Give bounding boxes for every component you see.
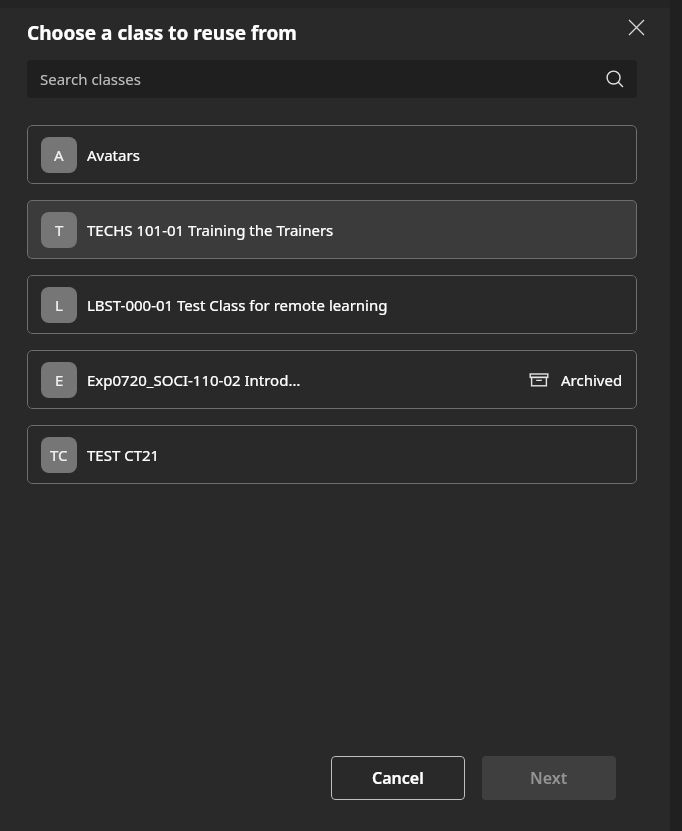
staticText: Choose a class to reuse from: [27, 20, 297, 46]
button[interactable]: Close: [620, 11, 652, 43]
staticText: Archived: [561, 370, 623, 390]
button[interactable]: E: [27, 350, 637, 409]
button[interactable]: A: [27, 125, 637, 184]
button[interactable]: T: [27, 200, 637, 259]
staticText: Cancel: [372, 767, 424, 789]
staticText: TEST CT21: [87, 445, 160, 465]
button[interactable]: L: [27, 275, 637, 334]
staticText: T: [55, 220, 64, 240]
staticText: Next: [530, 767, 568, 789]
button[interactable]: Search classes: [27, 60, 637, 98]
button[interactable]: Next: [482, 756, 616, 800]
button[interactable]: TC: [27, 425, 637, 484]
staticText: TC: [50, 445, 68, 465]
button[interactable]: Cancel: [331, 756, 465, 800]
staticText: L: [55, 295, 63, 315]
staticText: E: [55, 370, 64, 390]
staticText: Exp0720_SOCI-110-02 Introduction to Soci…: [87, 370, 308, 390]
staticText: Search classes: [40, 69, 606, 89]
staticText: LBST-000-01 Test Class for remote learni…: [87, 295, 388, 315]
staticText: A: [54, 145, 64, 165]
staticText: TECHS 101-01 Training the Trainers: [87, 220, 334, 240]
staticText: Avatars: [87, 145, 140, 165]
